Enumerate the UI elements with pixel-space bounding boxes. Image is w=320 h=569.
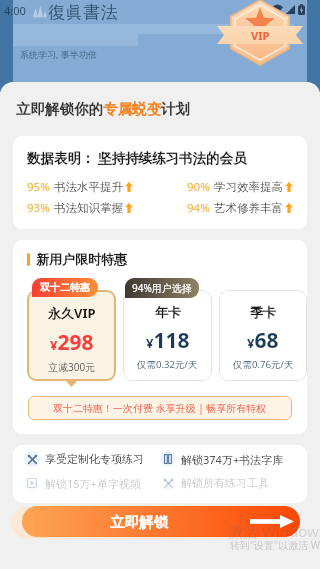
button[interactable]: 年卡 (123, 290, 212, 381)
staticText: 书法知识掌握 (54, 201, 123, 215)
staticText: 93% (27, 200, 50, 216)
staticText: 仅需0.32元/天 (137, 358, 198, 371)
button[interactable]: 永久VIP (27, 290, 116, 381)
staticText: 解锁15万+单字视频 (45, 476, 141, 491)
staticText: 立即解锁 (110, 513, 168, 531)
staticText: 復眞書法 (48, 2, 119, 23)
staticText: 90% (187, 179, 210, 195)
staticText: 解锁所有练习工具 (181, 476, 269, 490)
staticText: 年卡 (155, 304, 181, 320)
staticText: 解锁374万+书法字库 (181, 452, 284, 467)
staticText: 立减300元 (48, 360, 96, 374)
staticText: 立即解锁你的专属蜕变计划 (16, 100, 190, 118)
staticText: ¥68 (247, 326, 279, 355)
staticText: 仅需0.76元/天 (233, 358, 294, 371)
staticText: 数据表明： 坚持持续练习书法的会员 (27, 149, 247, 167)
staticText: 95% (27, 179, 50, 195)
staticText: 4:00 (4, 3, 26, 18)
staticText: 享受定制化专项练习 (45, 452, 144, 466)
staticText: 94%用户选择 (132, 281, 192, 295)
staticText: 双十二特惠 (40, 281, 90, 294)
staticText: 新用户限时特惠 (36, 251, 127, 267)
button[interactable]: 季卡 (219, 290, 307, 381)
staticText: VIP (251, 28, 270, 43)
staticText: 双十二特惠！一次付费 永享升级 | 畅享所有特权 (53, 401, 267, 415)
staticText: 激活 Windows (228, 521, 320, 541)
staticText: 书法水平提升 (54, 180, 123, 194)
staticText: 系统学习, 事半功倍 (20, 48, 97, 60)
staticText: 学习效率提高 (214, 180, 283, 194)
staticText: 季卡 (250, 304, 276, 320)
staticText: 94% (187, 200, 210, 216)
staticText: 转到"设置"以激活 Windows。 (230, 538, 320, 552)
staticText: ¥118 (146, 326, 190, 355)
button[interactable]: 立即解锁 (22, 506, 300, 537)
staticText: ¥298 (50, 328, 94, 357)
staticText: 永久VIP (48, 304, 96, 322)
staticText: 艺术修养丰富 (214, 201, 283, 215)
